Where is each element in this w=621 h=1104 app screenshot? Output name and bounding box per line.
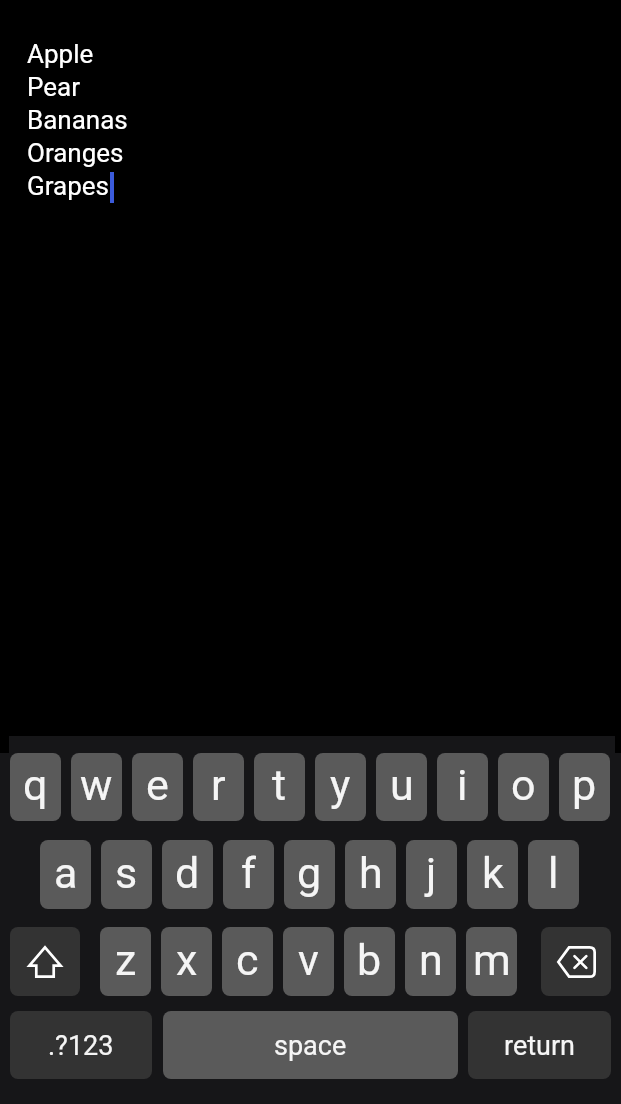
button[interactable]: return bbox=[468, 1011, 611, 1079]
button[interactable]: y bbox=[315, 753, 366, 821]
button[interactable]: g bbox=[284, 840, 335, 909]
button[interactable]: v bbox=[283, 927, 334, 996]
button[interactable]: j bbox=[406, 840, 457, 909]
button[interactable]: n bbox=[405, 927, 456, 996]
button[interactable]: Shift bbox=[10, 927, 80, 996]
staticText: s bbox=[115, 848, 138, 898]
button[interactable]: a bbox=[40, 840, 91, 909]
staticText: r bbox=[211, 760, 226, 810]
button[interactable]: p bbox=[559, 753, 610, 821]
staticText: y bbox=[330, 760, 351, 810]
button[interactable]: f bbox=[223, 840, 274, 909]
staticText: v bbox=[298, 935, 319, 985]
staticText: w bbox=[80, 760, 113, 810]
staticText: p bbox=[572, 760, 597, 810]
button[interactable]: Text field bbox=[27, 37, 128, 202]
staticText: j bbox=[426, 848, 437, 898]
staticText: e bbox=[146, 760, 169, 810]
staticText: t bbox=[272, 760, 287, 810]
button[interactable]: h bbox=[345, 840, 396, 909]
button[interactable]: Backspace bbox=[541, 927, 611, 996]
staticText: c bbox=[236, 935, 259, 985]
staticText: h bbox=[359, 848, 383, 898]
button[interactable]: l bbox=[528, 840, 579, 909]
button[interactable]: d bbox=[162, 840, 213, 909]
staticText: u bbox=[390, 760, 414, 810]
button[interactable]: k bbox=[467, 840, 518, 909]
staticText: b bbox=[357, 935, 382, 985]
button[interactable]: e bbox=[132, 753, 183, 821]
staticText: d bbox=[175, 848, 200, 898]
staticText: z bbox=[115, 935, 137, 985]
button[interactable]: z bbox=[100, 927, 151, 996]
button[interactable]: m bbox=[466, 927, 517, 996]
staticText: a bbox=[54, 848, 78, 898]
staticText: q bbox=[23, 760, 48, 810]
button[interactable]: u bbox=[376, 753, 427, 821]
staticText: k bbox=[482, 848, 504, 898]
button[interactable]: q bbox=[10, 753, 61, 821]
button[interactable]: x bbox=[161, 927, 212, 996]
button[interactable]: s bbox=[101, 840, 152, 909]
button[interactable]: t bbox=[254, 753, 305, 821]
staticText: m bbox=[473, 935, 511, 985]
button[interactable]: .?123 bbox=[10, 1011, 152, 1079]
button[interactable]: i bbox=[437, 753, 488, 821]
staticText: .?123 bbox=[48, 1030, 114, 1062]
staticText: n bbox=[419, 935, 443, 985]
staticText: Apple Pear Bananas Oranges Grapes bbox=[27, 37, 128, 202]
button[interactable]: o bbox=[498, 753, 549, 821]
staticText: g bbox=[297, 848, 322, 898]
button[interactable]: w bbox=[71, 753, 122, 821]
button[interactable]: c bbox=[222, 927, 273, 996]
staticText: l bbox=[548, 848, 559, 898]
button[interactable]: b bbox=[344, 927, 395, 996]
button[interactable]: space bbox=[163, 1011, 458, 1079]
button[interactable]: r bbox=[193, 753, 244, 821]
staticText: space bbox=[274, 1030, 347, 1062]
staticText: o bbox=[511, 760, 536, 810]
staticText: return bbox=[504, 1030, 575, 1062]
staticText: x bbox=[176, 935, 198, 985]
staticText: f bbox=[241, 848, 256, 898]
staticText: i bbox=[457, 760, 468, 810]
